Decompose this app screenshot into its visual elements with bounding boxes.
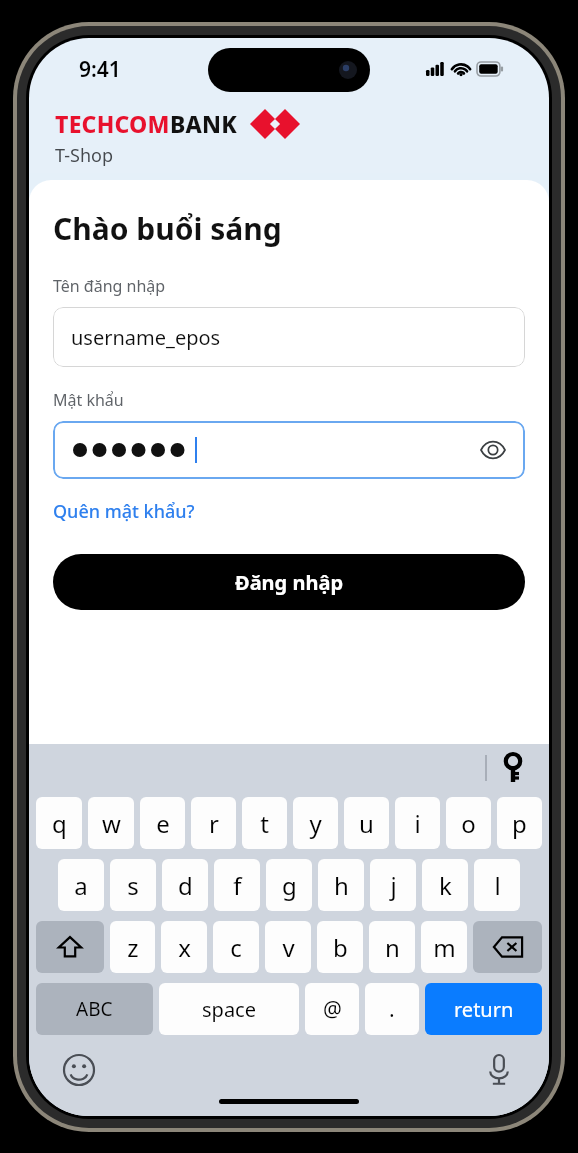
staticText: x <box>178 931 191 964</box>
button[interactable]: t <box>242 797 287 849</box>
button[interactable]: b <box>317 921 363 973</box>
button[interactable]: Hiện mật khẩu <box>53 421 525 479</box>
button[interactable]: Đăng nhập <box>53 554 525 610</box>
staticText: o <box>461 807 476 840</box>
staticText: q <box>52 807 67 840</box>
button[interactable]: n <box>369 921 415 973</box>
staticText: m <box>433 931 456 964</box>
button[interactable]: s <box>110 859 156 911</box>
button[interactable]: space <box>159 983 299 1035</box>
button[interactable]: l <box>474 859 520 911</box>
staticText: l <box>494 869 501 902</box>
staticText: username_epos <box>71 324 221 351</box>
staticText: y <box>309 807 322 840</box>
button[interactable]: return <box>425 983 542 1035</box>
button[interactable]: k <box>422 859 468 911</box>
staticText: r <box>209 807 219 840</box>
staticText: TECHCOM <box>55 108 170 139</box>
staticText: Tên đăng nhập <box>53 275 166 297</box>
staticText: return <box>454 996 514 1023</box>
button[interactable]: u <box>344 797 389 849</box>
button[interactable]: m <box>421 921 467 973</box>
button[interactable]: g <box>266 859 312 911</box>
staticText: T-Shop <box>55 143 114 168</box>
button[interactable]: e <box>140 797 185 849</box>
button[interactable]: i <box>395 797 440 849</box>
staticText: s <box>127 869 139 902</box>
staticText: z <box>127 931 139 964</box>
staticText: n <box>385 931 400 964</box>
staticText: space <box>202 996 256 1023</box>
button[interactable]: username_epos <box>53 307 525 367</box>
staticText: h <box>334 869 349 902</box>
button[interactable]: @ <box>305 983 359 1035</box>
staticText: BANK <box>170 108 237 139</box>
button[interactable]: Xóa <box>473 921 542 973</box>
button[interactable]: o <box>446 797 491 849</box>
staticText: Chào buổi sáng <box>53 208 282 249</box>
staticText: f <box>233 869 242 902</box>
button[interactable]: ABC <box>36 983 153 1035</box>
staticText: b <box>333 931 348 964</box>
button[interactable]: d <box>162 859 208 911</box>
staticText: Mật khẩu <box>53 389 124 411</box>
button[interactable]: z <box>110 921 155 973</box>
staticText: Đăng nhập <box>235 569 344 596</box>
staticText: 9:41 <box>79 55 121 84</box>
button[interactable]: Shift <box>36 921 104 973</box>
button[interactable]: y <box>293 797 338 849</box>
staticText: p <box>512 807 527 840</box>
staticText: g <box>282 869 297 902</box>
button[interactable]: j <box>370 859 416 911</box>
button[interactable]: w <box>88 797 134 849</box>
button[interactable]: r <box>191 797 236 849</box>
button[interactable]: x <box>161 921 207 973</box>
staticText: j <box>390 869 397 902</box>
staticText: e <box>156 807 170 840</box>
button[interactable]: Ghi âm <box>477 1048 521 1092</box>
staticText: v <box>282 931 295 964</box>
button[interactable]: Quên mật khẩu? <box>53 497 195 526</box>
button[interactable]: f <box>214 859 260 911</box>
button[interactable]: Mật khẩu đã lưu <box>491 746 535 790</box>
button[interactable]: . <box>365 983 419 1035</box>
staticText: a <box>74 869 88 902</box>
staticText: @ <box>323 995 342 1024</box>
button[interactable]: Hiện mật khẩu <box>473 430 513 470</box>
staticText: t <box>260 807 269 840</box>
button[interactable]: p <box>497 797 542 849</box>
staticText: i <box>414 807 421 840</box>
button[interactable]: v <box>265 921 311 973</box>
staticText: w <box>102 807 121 840</box>
button[interactable]: q <box>36 797 82 849</box>
button[interactable]: h <box>318 859 364 911</box>
staticText: ABC <box>76 996 113 1022</box>
staticText: u <box>359 807 374 840</box>
staticText: k <box>439 869 452 902</box>
button[interactable]: Emoji <box>57 1048 101 1092</box>
staticText: . <box>389 995 395 1024</box>
button[interactable]: c <box>213 921 259 973</box>
staticText: d <box>178 869 193 902</box>
button[interactable]: a <box>58 859 104 911</box>
staticText: Quên mật khẩu? <box>53 499 195 524</box>
staticText: c <box>230 931 242 964</box>
